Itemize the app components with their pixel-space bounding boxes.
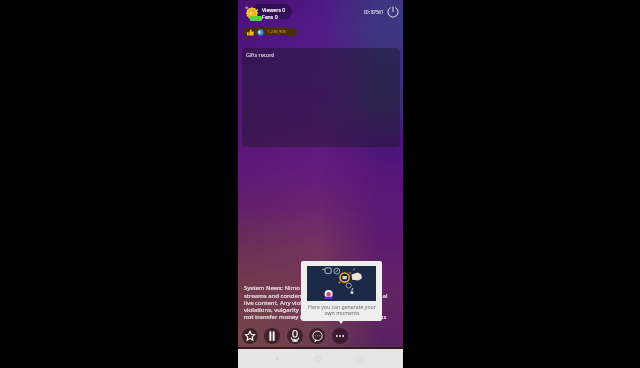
button[interactable]: Viewers 0 — [252, 4, 292, 19]
button[interactable]: Here you can generate your own moments — [301, 261, 382, 321]
button[interactable]: Microphone — [287, 328, 303, 344]
button[interactable]: Streamer profile — [245, 7, 259, 21]
staticText: System News: Nimo does not support illeg… — [244, 284, 388, 320]
button[interactable]: More options — [332, 328, 348, 344]
staticText: Viewers 0 — [262, 6, 286, 13]
button[interactable]: 1,238,905 — [243, 28, 297, 36]
button[interactable]: Favorite — [242, 328, 258, 344]
staticText: Gifts record — [246, 51, 275, 58]
staticText: ID: 87561 — [364, 9, 384, 15]
button[interactable]: Pause — [264, 328, 280, 344]
staticText: Here you can generate your own moments — [308, 303, 376, 317]
button[interactable]: Gifts record — [242, 48, 400, 147]
button[interactable]: End live stream — [387, 6, 399, 18]
staticText: 1,238,905 — [267, 29, 287, 35]
button[interactable]: Chat — [309, 328, 325, 344]
staticText: Fans 0 — [262, 13, 278, 19]
